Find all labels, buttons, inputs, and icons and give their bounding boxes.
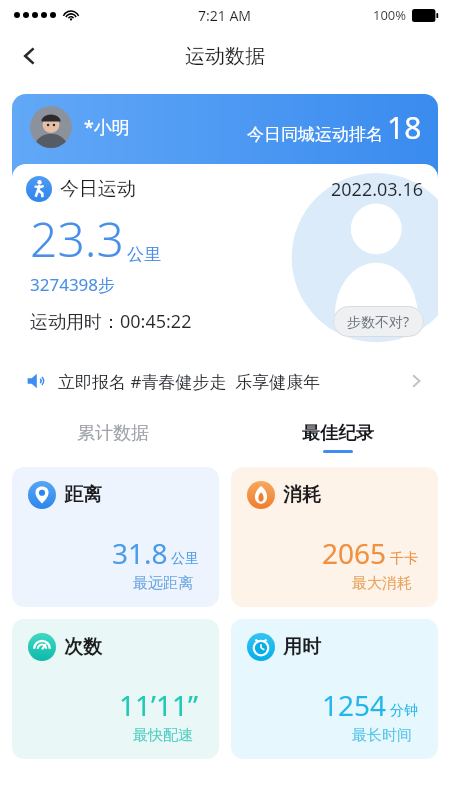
staticText: 最远距离 <box>133 574 193 593</box>
staticText: 公里 <box>171 550 199 568</box>
button[interactable]: 次数 <box>12 619 219 759</box>
staticText: 最快配速 <box>133 726 193 745</box>
staticText: 运动用时：00:45:22 <box>30 309 192 334</box>
staticText: 用时 <box>283 635 321 659</box>
button[interactable]: 最佳纪录 <box>225 422 450 453</box>
button[interactable]: *小明 <box>12 94 438 204</box>
staticText: 最长时间 <box>352 726 412 745</box>
staticText: 2022.03.16 <box>331 177 424 202</box>
staticText: 7:21 AM <box>198 6 252 25</box>
staticText: 步数不对? <box>347 312 410 331</box>
staticText: 3274398步 <box>30 273 116 296</box>
staticText: 31.8 <box>112 534 168 572</box>
staticText: 100% <box>373 6 407 24</box>
button[interactable]: 用时 <box>231 619 438 759</box>
staticText: 运动数据 <box>185 44 265 69</box>
staticText: 立即报名 #青春健步走 乐享健康年 <box>58 370 321 393</box>
staticText: 距离 <box>64 483 102 507</box>
button[interactable]: 步数不对? <box>333 306 424 337</box>
staticText: 千卡 <box>390 550 418 568</box>
button[interactable]: 立即报名 #青春健步走 乐享健康年 <box>12 358 438 404</box>
staticText: 23.3 <box>30 206 124 271</box>
button[interactable]: 今日运动 <box>12 164 438 344</box>
staticText: 最大消耗 <box>352 574 412 593</box>
button[interactable]: Back <box>8 34 52 78</box>
staticText: 分钟 <box>390 702 418 720</box>
staticText: 11’11” <box>119 686 199 724</box>
staticText: 次数 <box>64 635 102 659</box>
staticText: 公里 <box>127 244 161 265</box>
staticText: 累计数据 <box>77 422 149 445</box>
button[interactable]: 累计数据 <box>0 422 225 445</box>
staticText: 1254 <box>322 686 387 724</box>
staticText: 消耗 <box>283 483 321 507</box>
staticText: 18 <box>387 107 422 148</box>
button[interactable]: 消耗 <box>231 467 438 607</box>
staticText: *小明 <box>84 115 130 140</box>
staticText: 最佳纪录 <box>302 422 374 445</box>
staticText: 今日运动 <box>60 177 136 201</box>
staticText: 今日同城运动排名 <box>247 124 383 145</box>
staticText: 2065 <box>322 534 387 572</box>
button[interactable]: 距离 <box>12 467 219 607</box>
